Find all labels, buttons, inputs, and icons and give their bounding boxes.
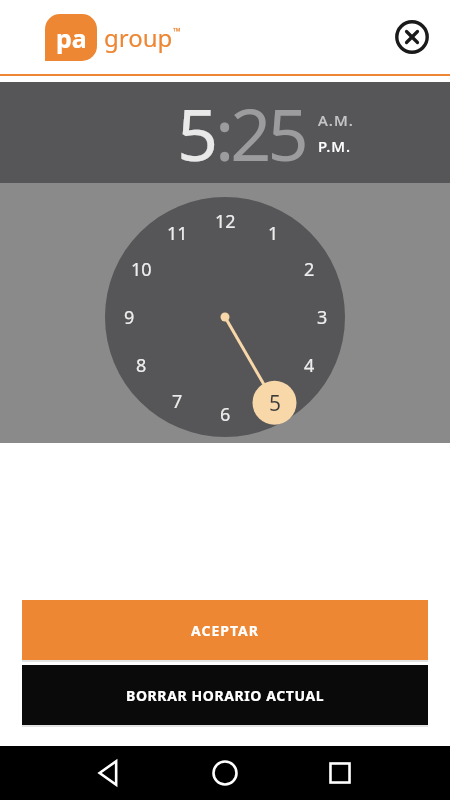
staticText: 12 bbox=[215, 209, 236, 234]
staticText: group bbox=[104, 21, 173, 54]
staticText: pa bbox=[56, 21, 87, 55]
staticText: ACEPTAR bbox=[191, 621, 259, 640]
button[interactable] bbox=[396, 21, 428, 53]
staticText: 2 bbox=[304, 257, 315, 282]
staticText: 10 bbox=[131, 257, 152, 282]
button[interactable] bbox=[326, 759, 354, 787]
staticText: :25 bbox=[215, 84, 305, 182]
staticText: 8 bbox=[136, 353, 147, 378]
staticText: 7 bbox=[172, 389, 183, 414]
staticText: 4 bbox=[304, 353, 315, 378]
button[interactable] bbox=[211, 759, 239, 787]
staticText: 9 bbox=[124, 305, 135, 330]
staticText: A.M. bbox=[318, 110, 354, 130]
button[interactable]: BORRAR HORARIO ACTUAL bbox=[22, 665, 428, 725]
staticText: 3 bbox=[317, 305, 328, 330]
staticText: P.M. bbox=[318, 136, 352, 156]
staticText: BORRAR HORARIO ACTUAL bbox=[126, 686, 325, 705]
staticText: 5 bbox=[177, 84, 215, 182]
button[interactable] bbox=[96, 759, 124, 787]
staticText: ™ bbox=[173, 24, 181, 38]
button[interactable]: ACEPTAR bbox=[22, 600, 428, 660]
staticText: 1 bbox=[268, 221, 279, 246]
staticText: 5 bbox=[269, 389, 282, 418]
staticText: 11 bbox=[167, 221, 188, 246]
staticText: 6 bbox=[220, 402, 231, 427]
